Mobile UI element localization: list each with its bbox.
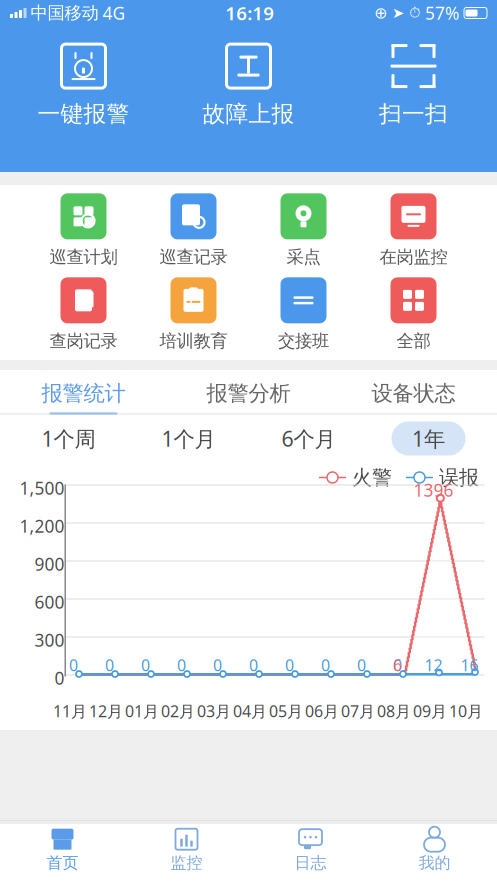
button[interactable]: 一键报警	[1, 35, 166, 135]
staticText: 0	[249, 654, 258, 676]
button[interactable]: 扫一扫	[331, 35, 496, 135]
staticText: 09月	[413, 700, 447, 722]
staticText: 10月	[449, 700, 483, 722]
button[interactable]: 巡查记录	[138, 192, 248, 268]
staticText: 1,200	[19, 514, 64, 537]
staticText: 我的	[418, 853, 450, 873]
button[interactable]: 交接班	[248, 276, 358, 352]
staticText: 1个周	[41, 424, 95, 453]
staticText: 4G	[102, 1, 125, 24]
staticText: 扫一扫	[379, 100, 448, 128]
staticText: 误报	[439, 465, 479, 490]
staticText: 0	[357, 654, 366, 676]
staticText: 0	[141, 654, 150, 676]
staticText: 300	[34, 628, 64, 651]
staticText: 0	[393, 654, 402, 676]
staticText: 查岗记录	[49, 330, 117, 352]
button[interactable]: 设备状态	[331, 367, 496, 413]
button[interactable]: 巡查计划	[28, 192, 138, 268]
staticText: 1年	[412, 424, 445, 453]
staticText: 12月	[89, 700, 123, 722]
staticText: ⏱	[409, 6, 420, 20]
button[interactable]: 报警分析	[166, 367, 331, 413]
staticText: 报警分析	[206, 380, 290, 407]
staticText: 02月	[161, 700, 195, 722]
staticText: 6	[393, 654, 402, 676]
button[interactable]: 故障上报	[166, 35, 331, 135]
staticText: 采点	[286, 246, 320, 268]
staticText: 0	[213, 654, 222, 676]
staticText: 1,500	[19, 476, 64, 499]
button[interactable]: 采点	[248, 192, 358, 268]
button[interactable]: 培训教育	[138, 276, 248, 352]
staticText: 6个月	[281, 424, 335, 453]
button[interactable]: 日志	[248, 824, 372, 876]
button[interactable]: 1年	[391, 421, 465, 455]
staticText: 05月	[269, 700, 303, 722]
staticText: 1个月	[161, 424, 215, 453]
button[interactable]: 我的	[372, 824, 496, 876]
staticText: 日志	[294, 853, 326, 873]
staticText: 监控	[170, 853, 202, 873]
staticText: 11月	[53, 700, 87, 722]
staticText: 首页	[46, 853, 78, 873]
button[interactable]: 1个周	[28, 421, 108, 455]
button[interactable]: 报警统计	[1, 367, 166, 413]
button[interactable]: 6个月	[268, 421, 348, 455]
staticText: 07月	[341, 700, 375, 722]
staticText: 故障上报	[202, 100, 294, 128]
button[interactable]: 监控	[124, 824, 248, 876]
staticText: 0	[285, 654, 294, 676]
staticText: 培训教育	[159, 330, 227, 352]
staticText: 600	[34, 590, 64, 613]
button[interactable]: 查岗记录	[28, 276, 138, 352]
staticText: 报警统计	[41, 380, 125, 407]
staticText: 900	[34, 552, 64, 575]
staticText: 16:19	[225, 1, 274, 25]
staticText: 0	[105, 654, 114, 676]
staticText: ➤	[392, 5, 404, 21]
staticText: 火警	[352, 465, 392, 490]
button[interactable]: 全部	[358, 276, 468, 352]
staticText: 0	[54, 666, 64, 689]
staticText: 04月	[233, 700, 267, 722]
staticText: 在岗监控	[379, 246, 447, 268]
staticText: ⊕	[374, 4, 387, 22]
button[interactable]: 首页	[0, 824, 124, 876]
staticText: 0	[69, 654, 78, 676]
staticText: 交接班	[278, 330, 329, 352]
staticText: 57%	[425, 1, 459, 24]
staticText: 03月	[197, 700, 231, 722]
staticText: 01月	[125, 700, 159, 722]
staticText: 一键报警	[37, 100, 129, 128]
staticText: 巡查计划	[49, 246, 117, 268]
staticText: 0	[177, 654, 186, 676]
staticText: 1396	[413, 478, 453, 501]
staticText: 设备状态	[371, 380, 455, 407]
staticText: 06月	[305, 700, 339, 722]
staticText: 16	[460, 654, 478, 676]
staticText: 中国移动	[30, 2, 98, 24]
staticText: 08月	[377, 700, 411, 722]
button[interactable]: 在岗监控	[358, 192, 468, 268]
button[interactable]: 1个月	[148, 421, 228, 455]
staticText: 全部	[396, 330, 430, 352]
staticText: 巡查记录	[159, 246, 227, 268]
staticText: 12	[424, 654, 442, 676]
staticText: 0	[321, 654, 330, 676]
